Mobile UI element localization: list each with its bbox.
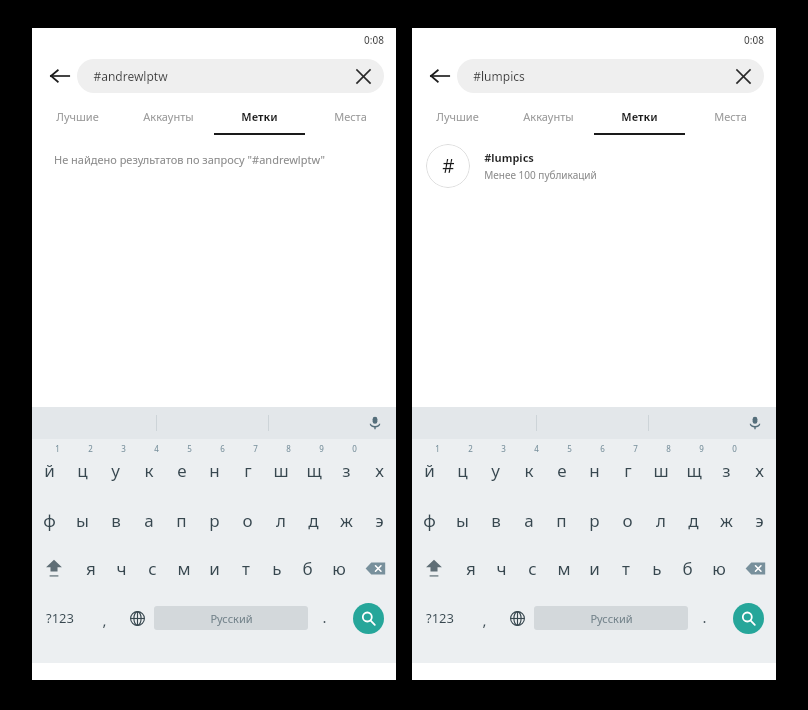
button[interactable]: ж [330, 496, 363, 544]
button[interactable]: # [412, 135, 776, 197]
button[interactable]: 4 [132, 439, 165, 496]
button[interactable]: 3 [99, 439, 132, 496]
button[interactable]: р [198, 496, 231, 544]
button[interactable]: #lumpics [457, 59, 764, 93]
button[interactable]: 2 [446, 439, 479, 496]
staticText: 1 [435, 443, 440, 454]
button[interactable]: 8 [644, 439, 677, 496]
button[interactable]: Shift [32, 544, 75, 592]
button[interactable]: я [75, 544, 106, 592]
button[interactable]: Русский [534, 606, 688, 630]
button[interactable]: в [479, 496, 512, 544]
button[interactable]: , [468, 592, 500, 644]
button[interactable]: я [455, 544, 486, 592]
button[interactable]: 6 [578, 439, 611, 496]
button[interactable]: Clear [350, 63, 376, 89]
button[interactable]: ы [66, 496, 99, 544]
button[interactable]: 9 [677, 439, 710, 496]
button[interactable]: о [231, 496, 264, 544]
button[interactable]: ю [703, 544, 734, 592]
button[interactable]: п [165, 496, 198, 544]
button[interactable]: ь [261, 544, 292, 592]
button[interactable]: 7 [231, 439, 264, 496]
button[interactable]: #andrewlptw [77, 59, 384, 93]
button[interactable]: 1 [32, 439, 66, 496]
button[interactable]: , [88, 592, 120, 644]
button[interactable]: 5 [165, 439, 198, 496]
button[interactable]: б [292, 544, 323, 592]
button[interactable]: э [363, 496, 396, 544]
button[interactable]: п [545, 496, 578, 544]
button[interactable]: Clear [730, 63, 756, 89]
button[interactable]: Shift [412, 544, 455, 592]
button[interactable]: Voice input [362, 410, 388, 436]
button[interactable]: Места [685, 100, 776, 133]
button[interactable]: т [230, 544, 261, 592]
button[interactable]: Search [720, 592, 776, 644]
button[interactable]: б [672, 544, 703, 592]
button[interactable]: с [137, 544, 168, 592]
button[interactable]: ?123 [412, 592, 468, 644]
button[interactable]: Места [305, 100, 396, 133]
staticText: 9 [319, 443, 324, 454]
button[interactable]: Back [420, 56, 460, 96]
button[interactable]: Backspace [354, 544, 396, 592]
button[interactable]: Backspace [734, 544, 776, 592]
button[interactable]: 0 [330, 439, 363, 496]
button[interactable]: 8 [264, 439, 297, 496]
button[interactable]: Аккаунты [123, 100, 214, 133]
button[interactable]: д [677, 496, 710, 544]
button[interactable]: Change language [120, 592, 154, 644]
button[interactable]: Back [40, 56, 80, 96]
button[interactable]: Voice input [742, 410, 768, 436]
button[interactable]: и [579, 544, 610, 592]
button[interactable]: м [168, 544, 199, 592]
button[interactable]: ь [641, 544, 672, 592]
button[interactable]: 4 [512, 439, 545, 496]
staticText: # [442, 153, 455, 179]
button[interactable]: ?123 [32, 592, 88, 644]
button[interactable]: 0 [710, 439, 743, 496]
button[interactable]: м [548, 544, 579, 592]
button[interactable]: 7 [611, 439, 644, 496]
button[interactable]: ч [486, 544, 517, 592]
staticText: э [375, 509, 384, 532]
button[interactable]: Change language [500, 592, 534, 644]
button[interactable]: Метки [594, 100, 685, 133]
button[interactable]: а [512, 496, 545, 544]
staticText: Места [714, 109, 747, 124]
button[interactable]: в [99, 496, 132, 544]
button[interactable]: о [611, 496, 644, 544]
button[interactable]: а [132, 496, 165, 544]
button[interactable]: т [610, 544, 641, 592]
button[interactable]: ж [710, 496, 743, 544]
button[interactable]: Лучшие [412, 100, 503, 133]
button[interactable]: 6 [198, 439, 231, 496]
button[interactable]: и [199, 544, 230, 592]
button[interactable]: Search [340, 592, 396, 644]
button[interactable]: д [297, 496, 330, 544]
button[interactable]: 3 [479, 439, 512, 496]
button[interactable]: ч [106, 544, 137, 592]
button[interactable]: х [363, 439, 396, 496]
button[interactable]: л [644, 496, 677, 544]
button[interactable]: ы [446, 496, 479, 544]
button[interactable]: 2 [66, 439, 99, 496]
button[interactable]: Русский [154, 606, 308, 630]
button[interactable]: Лучшие [32, 100, 123, 133]
button[interactable]: э [743, 496, 776, 544]
button[interactable]: . [308, 592, 340, 644]
button[interactable]: р [578, 496, 611, 544]
button[interactable]: 5 [545, 439, 578, 496]
button[interactable]: 9 [297, 439, 330, 496]
button[interactable]: л [264, 496, 297, 544]
button[interactable]: ф [412, 496, 446, 544]
button[interactable]: Аккаунты [503, 100, 594, 133]
button[interactable]: с [517, 544, 548, 592]
button[interactable]: ю [323, 544, 354, 592]
button[interactable]: Метки [214, 100, 305, 133]
button[interactable]: 1 [412, 439, 446, 496]
button[interactable]: ф [32, 496, 66, 544]
button[interactable]: х [743, 439, 776, 496]
button[interactable]: . [688, 592, 720, 644]
